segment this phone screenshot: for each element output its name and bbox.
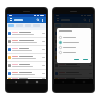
button[interactable]: Home bbox=[25, 80, 29, 84]
button[interactable]: Recent apps bbox=[82, 80, 86, 84]
button[interactable] bbox=[59, 51, 89, 54]
button[interactable]: More options bbox=[40, 18, 44, 22]
button[interactable]: Recent apps bbox=[35, 80, 39, 84]
button[interactable] bbox=[7, 54, 46, 61]
button[interactable]: Back bbox=[14, 80, 18, 84]
button[interactable]: Back bbox=[61, 80, 65, 84]
button[interactable] bbox=[7, 78, 46, 79]
button[interactable] bbox=[54, 78, 93, 79]
button[interactable] bbox=[7, 70, 46, 77]
button[interactable] bbox=[54, 62, 93, 69]
button[interactable]: Open navigation menu bbox=[9, 18, 13, 22]
button[interactable]: Home bbox=[72, 80, 76, 84]
button[interactable]: Open navigation menu bbox=[56, 18, 60, 22]
button[interactable] bbox=[54, 70, 93, 77]
button[interactable] bbox=[54, 46, 93, 53]
button[interactable] bbox=[59, 41, 89, 44]
button[interactable]: Search bbox=[36, 18, 40, 22]
button[interactable] bbox=[59, 36, 89, 39]
button[interactable] bbox=[54, 38, 93, 45]
button[interactable] bbox=[54, 30, 93, 37]
button[interactable]: Search bbox=[83, 18, 87, 22]
button[interactable] bbox=[82, 58, 89, 61]
button[interactable]: More options bbox=[87, 18, 91, 22]
button[interactable] bbox=[7, 46, 46, 53]
button[interactable] bbox=[7, 62, 46, 69]
button[interactable] bbox=[8, 24, 14, 27]
button[interactable] bbox=[7, 38, 46, 45]
button[interactable] bbox=[7, 30, 46, 37]
button[interactable] bbox=[73, 58, 80, 61]
button[interactable] bbox=[59, 46, 89, 49]
button[interactable] bbox=[54, 54, 93, 61]
